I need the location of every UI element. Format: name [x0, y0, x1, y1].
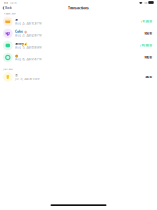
staticText: Aug 25, 2024 10:30 PM: [15, 22, 41, 25]
button[interactable]: Back: [2, 5, 12, 11]
staticText: -$45.00: [144, 75, 151, 79]
staticText: 9:41: [4, 1, 8, 4]
staticText: Wallet: [10, 1, 17, 4]
staticText: Aug 21, 2024 02:00 PM: [15, 34, 41, 37]
staticText: August 2024: [3, 12, 15, 15]
staticText: -$180.00: [143, 56, 151, 59]
staticText: July 2024: [3, 67, 12, 70]
staticText: + $1,500.00: [140, 20, 151, 23]
staticText: Coke 🍿: [15, 30, 27, 33]
staticText: Jul 31, 2024 08:15 AM: [15, 77, 39, 80]
button[interactable]: ☕️: [0, 71, 157, 83]
staticText: + $10,000.00: [139, 44, 151, 47]
staticText: Aug 05, 2024 07:45 PM: [15, 57, 41, 61]
staticText: 🍔: [15, 54, 18, 57]
staticText: Sh: [15, 18, 18, 21]
staticText: Aug 15, 2024 09:00 AM: [15, 46, 41, 49]
button[interactable]: Sh: [0, 15, 157, 27]
button[interactable]: Salary 💰: [0, 39, 157, 51]
staticText: Back: [5, 6, 11, 10]
button[interactable]: 🍔: [0, 51, 157, 63]
staticText: Transactions: [68, 6, 89, 10]
staticText: ☕️: [15, 74, 18, 77]
staticText: -$350.00: [143, 32, 151, 35]
button[interactable]: Coke 🍿: [0, 27, 157, 39]
staticText: Salary 💰: [15, 42, 27, 45]
staticText: 100: [144, 1, 147, 4]
